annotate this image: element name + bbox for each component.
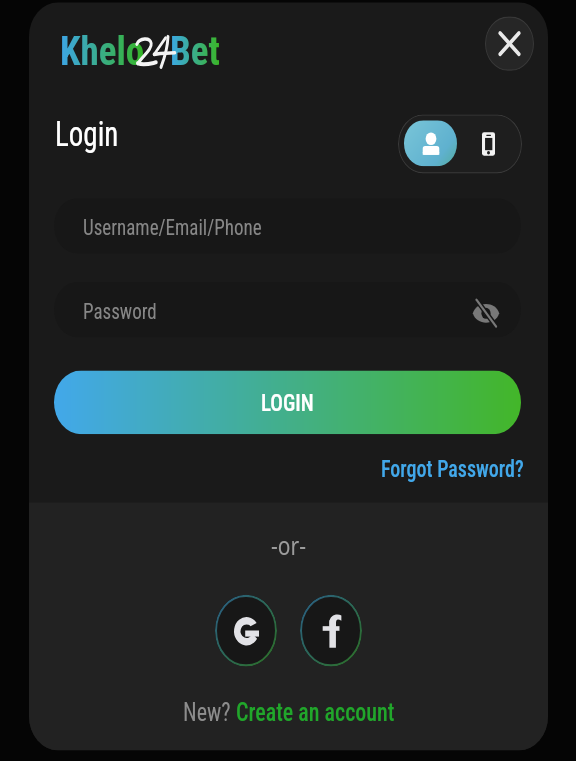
- button[interactable]: Login with username: [404, 120, 457, 166]
- staticText: Username/Email/Phone: [83, 214, 262, 240]
- staticText: Bet: [170, 28, 220, 71]
- button[interactable]: LOGIN: [54, 370, 521, 434]
- staticText: Create an account: [236, 697, 395, 728]
- button[interactable]: Sign in with Google: [215, 595, 277, 667]
- staticText: Forgot Password?: [381, 454, 524, 481]
- staticText: Password: [83, 297, 157, 323]
- button[interactable]: Show password: [471, 297, 501, 328]
- staticText: -or-: [271, 529, 306, 563]
- button[interactable]: Username/Email/Phone: [54, 198, 521, 254]
- button[interactable]: Forgot Password?: [372, 448, 533, 487]
- staticText: Login: [55, 114, 119, 154]
- button[interactable]: Close: [485, 16, 534, 71]
- button[interactable]: Sign in with Facebook: [300, 595, 362, 667]
- staticText: Khelo: [60, 28, 145, 71]
- staticText: LOGIN: [261, 388, 314, 418]
- button[interactable]: Login with phone: [466, 121, 510, 166]
- button[interactable]: Create an account: [236, 697, 395, 728]
- button[interactable]: Password: [54, 282, 521, 337]
- staticText: New?: [183, 697, 236, 728]
